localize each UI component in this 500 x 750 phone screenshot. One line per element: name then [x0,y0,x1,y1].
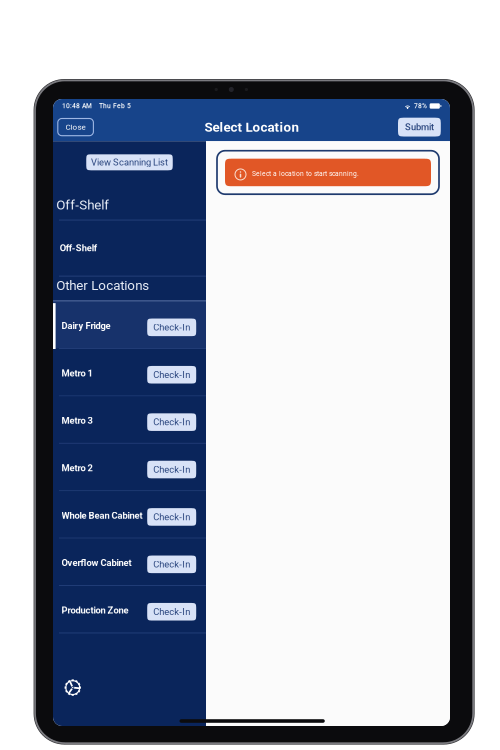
button[interactable]: Metro 2 [53,444,206,490]
button[interactable]: Settings [64,679,81,696]
staticText: Other Locations [56,278,149,293]
button[interactable]: Check-In [147,603,196,621]
staticText: 78% [414,102,427,110]
staticText: Whole Bean Cabinet [62,510,143,521]
button[interactable]: Close [58,118,93,136]
staticText: Check-In [153,511,190,522]
staticText: Check-In [153,417,190,428]
staticText: Off-Shelf [60,243,97,253]
staticText: Metro 3 [62,415,93,426]
button[interactable]: Check-In [147,366,196,383]
staticText: Off-Shelf [56,197,109,213]
staticText: Production Zone [62,605,129,616]
staticText: Check-In [153,464,190,475]
staticText: Close [66,122,86,132]
button[interactable]: Whole Bean Cabinet [53,491,206,538]
staticText: View Scanning List [91,157,168,168]
staticText: Metro 1 [62,368,93,379]
button[interactable]: Check-In [147,555,196,573]
button[interactable]: Metro 3 [53,396,206,443]
button[interactable]: Production Zone [53,586,206,632]
staticText: Dairy Fridge [62,320,111,331]
button[interactable]: Check-In [147,413,196,431]
staticText: Overflow Cabinet [62,557,132,568]
staticText: Select Location [204,119,298,135]
staticText: Metro 2 [62,463,93,473]
button[interactable]: View Scanning List [86,154,173,170]
staticText: Submit [405,122,434,132]
staticText: Select a location to start scanning. [252,170,359,177]
staticText: Check-In [153,322,190,333]
staticText: Check-In [153,606,190,617]
staticText: 10:48 AM [62,102,92,110]
button[interactable]: Off-Shelf [53,220,206,276]
button[interactable]: Check-In [147,508,196,526]
button[interactable]: Dairy Fridge [53,302,206,348]
staticText: Check-In [153,559,190,570]
staticText: Check-In [153,369,190,380]
button[interactable]: Check-In [147,319,196,336]
button[interactable]: Submit [398,118,441,136]
staticText: Thu Feb 5 [99,102,131,110]
button[interactable]: Check-In [147,461,196,478]
button[interactable]: Overflow Cabinet [53,539,206,585]
button[interactable]: Metro 1 [53,349,206,395]
